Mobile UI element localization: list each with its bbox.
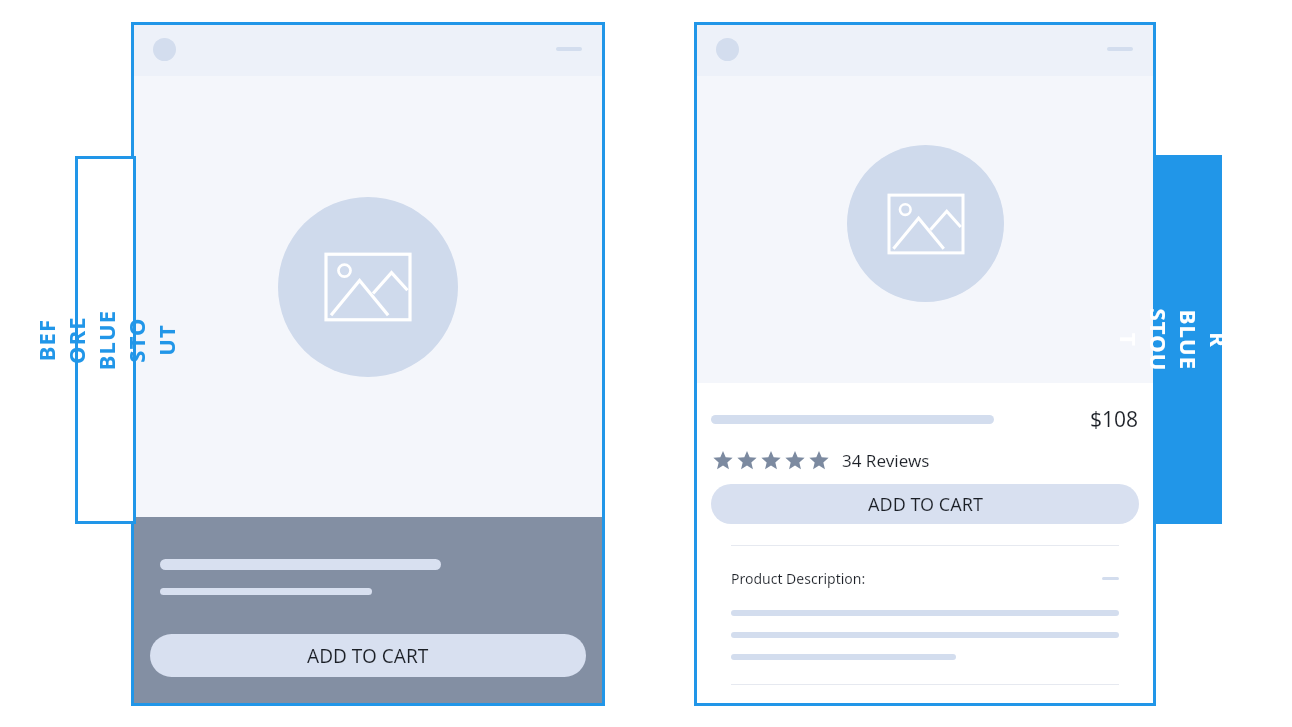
- button[interactable]: Menu: [153, 38, 176, 61]
- button[interactable]: Product Description:: [731, 569, 1119, 588]
- button[interactable]: More options: [1107, 47, 1133, 51]
- button[interactable]: AFTER BLUE STOUT: [1155, 155, 1222, 524]
- staticText: BEFORE BLUE STOUT: [30, 309, 180, 370]
- button[interactable]: ADD TO CART: [711, 484, 1139, 524]
- button[interactable]: Menu: [716, 38, 739, 61]
- staticText: $108: [1090, 405, 1139, 434]
- button[interactable]: ADD TO CART: [150, 634, 586, 677]
- button[interactable]: More options: [556, 47, 582, 51]
- staticText: 34 Reviews: [842, 449, 930, 472]
- staticText: ADD TO CART: [868, 492, 983, 517]
- staticText: Product Description:: [731, 569, 866, 588]
- staticText: ADD TO CART: [307, 643, 429, 669]
- button[interactable]: BEFORE BLUE STOUT: [75, 156, 136, 524]
- staticText: AFTER BLUE STOUT: [1113, 306, 1263, 373]
